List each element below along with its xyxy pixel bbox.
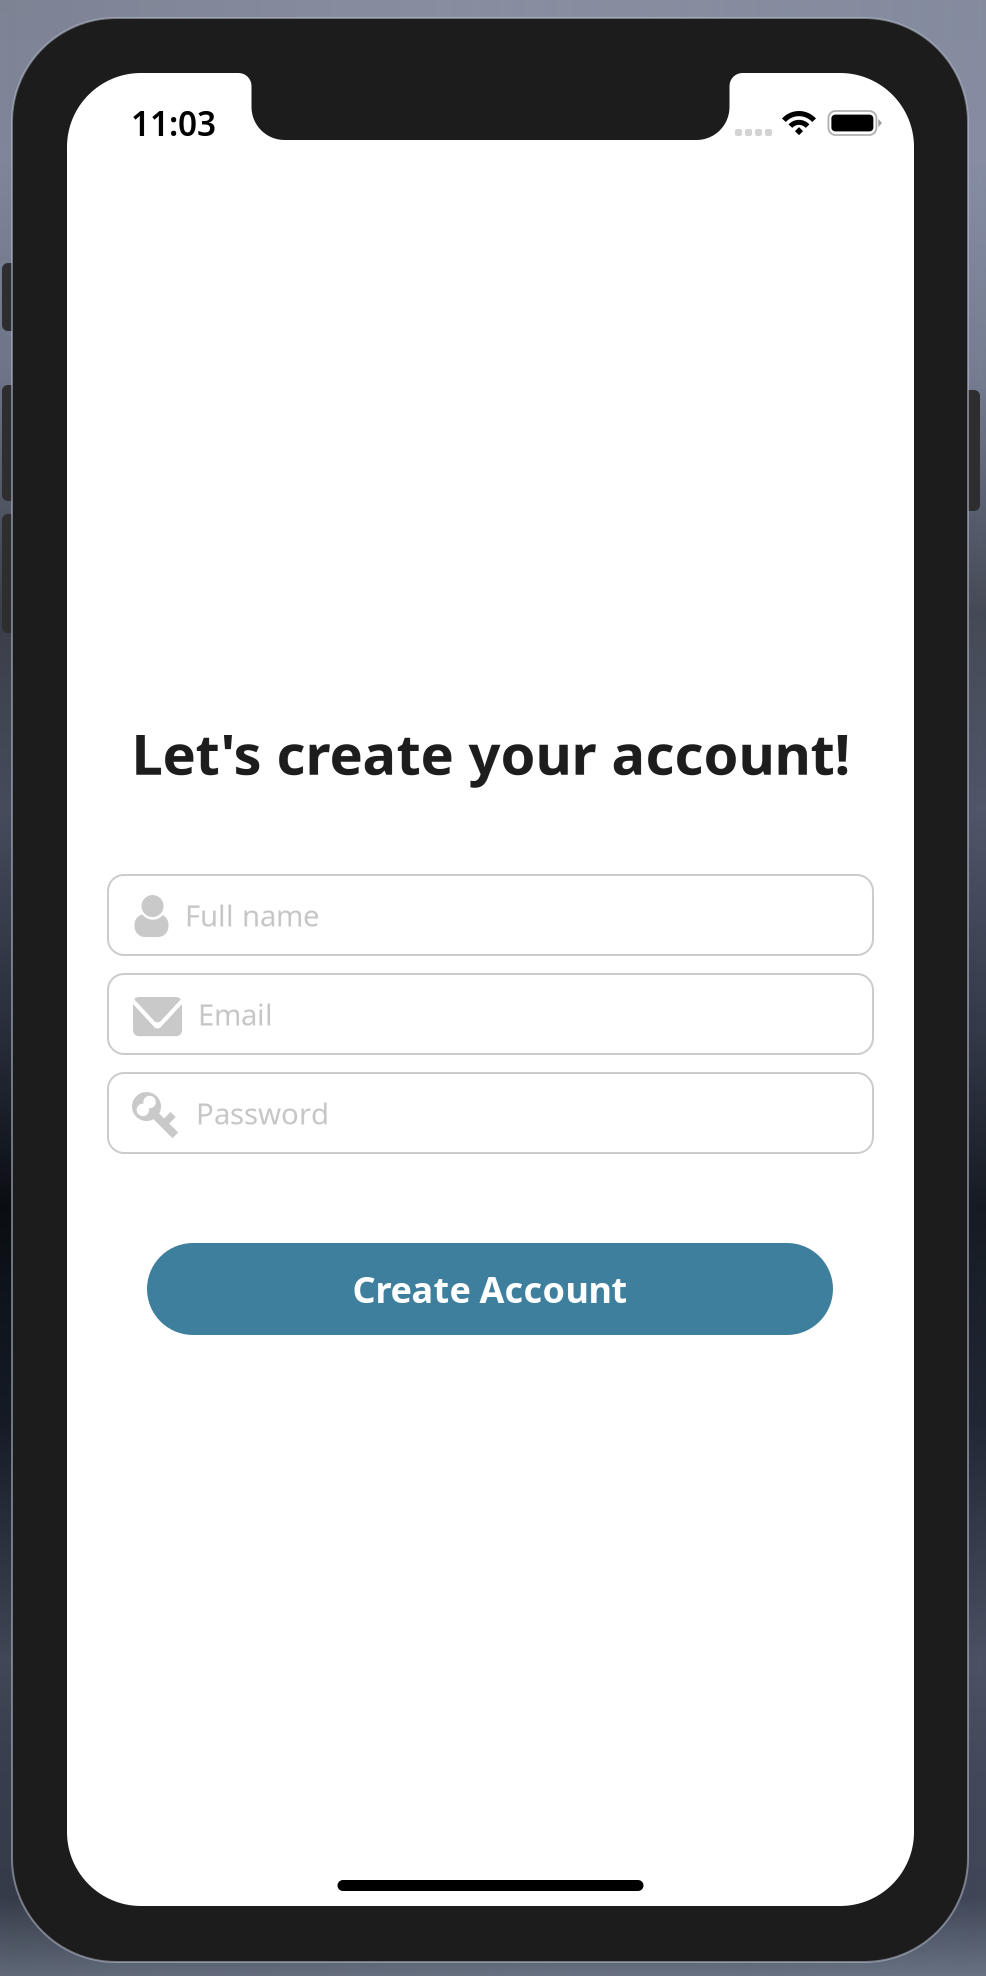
button[interactable]: Password bbox=[108, 1073, 873, 1153]
button[interactable]: Full name bbox=[108, 875, 873, 955]
staticText: Password bbox=[196, 1093, 329, 1132]
button[interactable]: Email bbox=[108, 974, 873, 1054]
button[interactable]: Create Account bbox=[147, 1243, 833, 1335]
staticText: Full name bbox=[185, 895, 320, 934]
staticText: Let's create your account! bbox=[131, 716, 850, 790]
staticText: Create Account bbox=[352, 1265, 627, 1313]
staticText: Email bbox=[198, 994, 273, 1033]
staticText: 11:03 bbox=[131, 101, 216, 145]
